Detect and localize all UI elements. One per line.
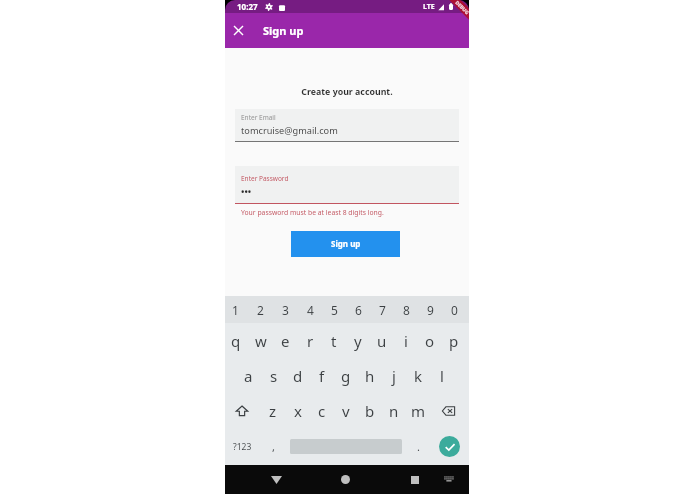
button[interactable]: k	[406, 358, 430, 393]
button[interactable]: u	[370, 323, 394, 358]
button[interactable]: w	[248, 323, 273, 358]
button[interactable]: Sign up	[291, 231, 400, 257]
button[interactable]: 0	[442, 296, 466, 323]
button[interactable]: c	[310, 393, 334, 428]
button[interactable]: r	[298, 323, 322, 358]
staticText: x	[294, 401, 302, 421]
staticText: 10:27	[237, 1, 258, 12]
button[interactable]: t	[322, 323, 346, 358]
staticText: n	[389, 401, 399, 421]
staticText: l	[440, 366, 444, 386]
staticText: tomcruise@gmail.com	[241, 124, 338, 137]
staticText: 0	[451, 302, 458, 318]
staticText: Sign up	[331, 238, 361, 249]
staticText: f	[319, 366, 325, 386]
button[interactable]: Backspace	[430, 393, 466, 428]
button[interactable]: m	[406, 393, 430, 428]
staticText: z	[269, 401, 277, 421]
button[interactable]: Recents	[400, 465, 429, 494]
button[interactable]: 5	[322, 296, 346, 323]
staticText: o	[425, 331, 435, 351]
staticText: Create your account.	[225, 86, 469, 98]
button[interactable]: ?123	[225, 428, 260, 465]
button[interactable]: Switch keyboard	[434, 465, 463, 494]
staticText: y	[354, 331, 362, 351]
button[interactable]: b	[358, 393, 382, 428]
staticText: 3	[282, 302, 289, 318]
staticText: v	[342, 401, 350, 421]
button[interactable]: q	[225, 323, 248, 358]
button[interactable]: 4	[298, 296, 322, 323]
button[interactable]: s	[261, 358, 286, 393]
button[interactable]: 7	[370, 296, 394, 323]
staticText: s	[270, 366, 278, 386]
staticText: g	[341, 366, 351, 386]
staticText: Enter Email	[241, 113, 276, 122]
button[interactable]: ,	[260, 428, 287, 465]
button[interactable]: Home	[331, 465, 360, 494]
button[interactable]: Close	[225, 13, 252, 48]
button[interactable]: n	[382, 393, 406, 428]
staticText: Your password must be at least 8 digits …	[241, 208, 384, 217]
staticText: 9	[427, 302, 434, 318]
button[interactable]: 1	[225, 296, 248, 323]
button[interactable]: g	[334, 358, 358, 393]
button[interactable]: 2	[248, 296, 273, 323]
staticText: h	[365, 366, 375, 386]
button[interactable]: h	[358, 358, 382, 393]
staticText: 2	[257, 302, 264, 318]
staticText: u	[377, 331, 387, 351]
staticText: ,	[272, 439, 275, 454]
staticText: 8	[403, 302, 410, 318]
staticText: 6	[355, 302, 362, 318]
staticText: j	[392, 366, 396, 386]
staticText: i	[404, 331, 408, 351]
button[interactable]: Enter Email	[235, 109, 459, 142]
button[interactable]: 9	[418, 296, 442, 323]
button[interactable]: i	[394, 323, 418, 358]
button[interactable]: f	[310, 358, 334, 393]
button[interactable]: a	[236, 358, 261, 393]
staticText: LTE	[423, 2, 435, 12]
button[interactable]: Back	[262, 465, 291, 494]
button[interactable]: v	[334, 393, 358, 428]
staticText: p	[449, 331, 459, 351]
staticText: 1	[232, 302, 239, 318]
staticText: k	[414, 366, 423, 386]
staticText: c	[318, 401, 326, 421]
button[interactable]: .	[406, 428, 431, 465]
staticText: e	[281, 331, 290, 351]
staticText: r	[307, 331, 314, 351]
staticText: ?123	[233, 441, 252, 453]
button[interactable]: y	[346, 323, 370, 358]
button[interactable]: Enter Password	[241, 166, 453, 203]
button[interactable]: 6	[346, 296, 370, 323]
staticText: •••	[241, 185, 252, 197]
staticText: w	[255, 331, 267, 351]
button[interactable]: x	[285, 393, 310, 428]
staticText: b	[365, 401, 375, 421]
button[interactable]: p	[442, 323, 466, 358]
button[interactable]: o	[418, 323, 442, 358]
staticText: t	[331, 331, 337, 351]
button[interactable]: z	[260, 393, 285, 428]
staticText: 5	[331, 302, 338, 318]
staticText: a	[244, 366, 253, 386]
button[interactable]: Enter	[431, 428, 468, 465]
button[interactable]: Shift	[225, 393, 260, 428]
staticText: Sign up	[263, 23, 304, 38]
staticText: 7	[379, 302, 386, 318]
button[interactable]: j	[382, 358, 406, 393]
staticText: .	[417, 439, 420, 454]
button[interactable]: 3	[273, 296, 298, 323]
button[interactable]: e	[273, 323, 298, 358]
staticText: DEBUG	[453, 0, 469, 16]
staticText: q	[231, 331, 241, 351]
staticText: Enter Password	[241, 174, 289, 183]
button[interactable]: d	[286, 358, 310, 393]
button[interactable]: l	[430, 358, 454, 393]
staticText: d	[293, 366, 303, 386]
staticText: 4	[307, 302, 314, 318]
button[interactable]	[286, 428, 406, 465]
button[interactable]: 8	[394, 296, 418, 323]
